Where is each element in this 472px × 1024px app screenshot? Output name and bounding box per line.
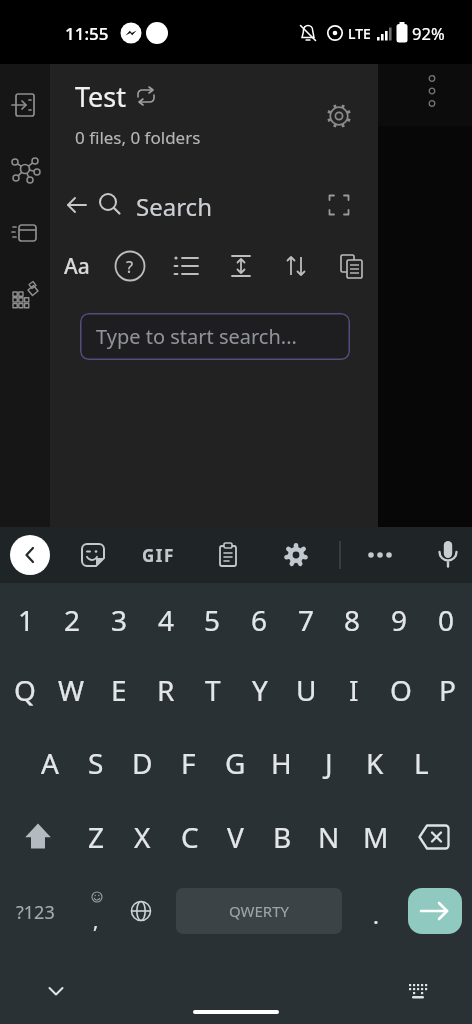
button[interactable]: A — [27, 741, 72, 785]
staticText: U — [296, 671, 317, 709]
staticText: L — [414, 744, 429, 782]
button[interactable]: 9 — [377, 598, 422, 642]
button[interactable] — [132, 82, 160, 110]
staticText: . — [373, 900, 379, 930]
staticText: GIF — [142, 544, 175, 567]
staticText: D — [132, 744, 153, 782]
staticText: H — [271, 744, 292, 782]
button[interactable] — [9, 89, 41, 121]
button[interactable] — [321, 98, 357, 134]
button[interactable] — [224, 249, 258, 283]
button[interactable] — [94, 188, 126, 220]
button[interactable]: N — [306, 815, 351, 859]
button[interactable]: T — [190, 668, 235, 712]
button[interactable]: 7 — [284, 598, 329, 642]
staticText: 0 files, 0 folders — [75, 126, 201, 149]
button[interactable] — [363, 538, 397, 572]
button[interactable]: O — [378, 668, 423, 712]
button[interactable]: QWERTY — [176, 888, 342, 934]
button[interactable] — [125, 895, 157, 927]
button[interactable]: G — [213, 741, 258, 785]
button[interactable]: C — [167, 815, 212, 859]
button[interactable] — [412, 815, 456, 859]
button[interactable]: H — [259, 741, 304, 785]
button[interactable]: 6 — [237, 598, 282, 642]
button[interactable]: W — [49, 668, 94, 712]
staticText: E — [111, 671, 127, 709]
staticText: S — [88, 744, 104, 782]
staticText: 4 — [158, 601, 175, 639]
button[interactable] — [40, 975, 72, 1007]
button[interactable]: Y — [237, 668, 282, 712]
button[interactable] — [279, 249, 313, 283]
staticText: 7 — [298, 601, 315, 639]
button[interactable]: 1 — [4, 598, 49, 642]
button[interactable] — [280, 539, 312, 571]
button[interactable]: X — [120, 815, 165, 859]
button[interactable] — [408, 888, 462, 934]
button[interactable] — [334, 249, 368, 283]
staticText: Aa — [64, 252, 90, 281]
staticText: Q — [14, 671, 36, 709]
button[interactable]: Z — [74, 815, 119, 859]
button[interactable] — [112, 248, 148, 284]
button[interactable]: S — [73, 741, 118, 785]
button[interactable]: ?123 — [0, 898, 77, 926]
button[interactable] — [431, 537, 465, 571]
staticText: 9 — [391, 601, 408, 639]
button[interactable]: 8 — [330, 598, 375, 642]
staticText: J — [325, 744, 333, 782]
button[interactable] — [169, 249, 203, 283]
button[interactable]: Q — [2, 668, 47, 712]
button[interactable]: L — [399, 741, 444, 785]
button[interactable]: 5 — [190, 598, 235, 642]
button[interactable] — [16, 814, 60, 858]
button[interactable]: M — [353, 815, 398, 859]
button[interactable] — [213, 540, 243, 570]
button[interactable]: K — [352, 741, 397, 785]
button[interactable]: 4 — [144, 598, 189, 642]
button[interactable]: Type to start search... — [80, 313, 350, 360]
staticText: 5 — [204, 601, 221, 639]
staticText: F — [181, 744, 196, 782]
staticText: X — [134, 818, 151, 856]
button[interactable]: . — [356, 897, 395, 932]
button[interactable] — [324, 190, 354, 220]
staticText: B — [273, 818, 292, 856]
button[interactable] — [77, 539, 109, 571]
staticText: Type to start search... — [96, 323, 297, 350]
button[interactable] — [62, 190, 92, 220]
button[interactable] — [10, 535, 50, 575]
staticText: O — [390, 671, 412, 709]
staticText: 3 — [111, 601, 128, 639]
staticText: A — [41, 744, 59, 782]
button[interactable] — [402, 975, 434, 1007]
button[interactable]: R — [143, 668, 188, 712]
staticText: R — [157, 671, 175, 709]
button[interactable]: 3 — [97, 598, 142, 642]
button[interactable]: D — [120, 741, 165, 785]
staticText: 1 — [18, 601, 35, 639]
staticText: QWERTY — [229, 901, 290, 921]
staticText: Y — [252, 671, 268, 709]
button[interactable]: V — [213, 815, 258, 859]
button[interactable]: E — [96, 668, 141, 712]
button[interactable]: B — [260, 815, 305, 859]
button[interactable] — [8, 152, 42, 186]
staticText: 92% — [412, 22, 445, 44]
button[interactable]: GIF — [126, 542, 191, 569]
button[interactable]: Aa — [48, 250, 105, 283]
staticText: N — [318, 818, 340, 856]
staticText: 11:55 — [65, 22, 109, 45]
button[interactable]: J — [306, 741, 351, 785]
button[interactable]: P — [425, 668, 470, 712]
button[interactable] — [8, 280, 42, 314]
button[interactable]: I — [331, 668, 376, 712]
button[interactable]: F — [166, 741, 211, 785]
button[interactable]: 2 — [50, 598, 95, 642]
staticText: , — [93, 907, 99, 934]
button[interactable]: U — [284, 668, 329, 712]
button[interactable]: 0 — [424, 598, 469, 642]
button[interactable] — [76, 885, 116, 937]
button[interactable] — [9, 217, 41, 249]
